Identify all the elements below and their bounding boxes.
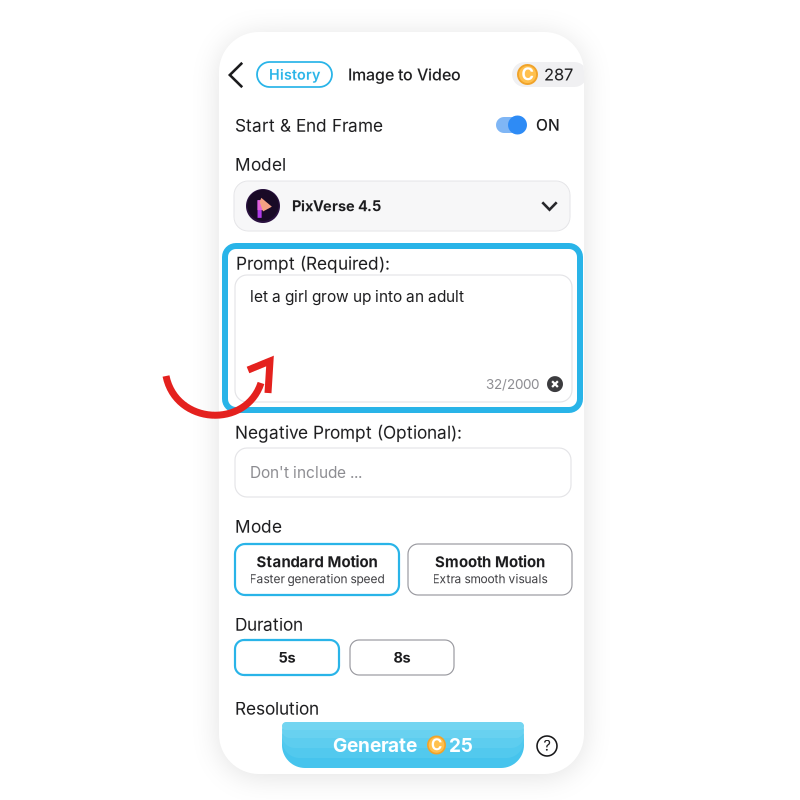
staticText: Resolution (235, 698, 319, 719)
staticText: History (269, 66, 320, 83)
staticText: C (431, 735, 442, 754)
staticText: ? (543, 737, 550, 754)
button[interactable]: History (257, 62, 332, 87)
staticText: 25 (449, 733, 473, 756)
staticText: Don't include ... (250, 463, 362, 482)
button[interactable]: C (512, 62, 587, 87)
staticText: Prompt (Required): (236, 253, 390, 274)
staticText: Extra smooth visuals (432, 572, 547, 586)
staticText: Model (235, 154, 286, 175)
button[interactable]: Generate (282, 722, 524, 768)
staticText: let a girl grow up into an adult (250, 287, 464, 306)
button[interactable]: Back (221, 58, 251, 92)
staticText: Smooth Motion (435, 553, 545, 571)
button[interactable]: Standard Motion (235, 544, 399, 595)
button[interactable]: 8s (350, 640, 454, 675)
staticText: PixVerse 4.5 (292, 197, 381, 215)
staticText: Start & End Frame (235, 115, 383, 136)
staticText: 287 (544, 64, 573, 84)
staticText: ON (536, 116, 560, 134)
staticText: 8s (393, 649, 410, 666)
staticText: 5s (278, 649, 295, 666)
staticText: Negative Prompt (Optional): (235, 422, 462, 443)
staticText: Mode (235, 516, 282, 537)
staticText: Duration (235, 614, 303, 635)
staticText: Image to Video (348, 65, 461, 84)
button[interactable]: 5s (235, 640, 339, 675)
staticText: Faster generation speed (249, 572, 384, 586)
staticText: 32/2000 (486, 376, 539, 392)
button[interactable]: Don't include ... (235, 448, 571, 497)
button[interactable]: Help (532, 731, 562, 761)
staticText: Generate (333, 733, 417, 756)
staticText: Standard Motion (256, 553, 377, 571)
button[interactable]: PixVerse 4.5 (234, 181, 570, 231)
button[interactable]: ON (496, 113, 560, 137)
button[interactable]: Smooth Motion (408, 544, 572, 595)
staticText: C (521, 64, 533, 84)
